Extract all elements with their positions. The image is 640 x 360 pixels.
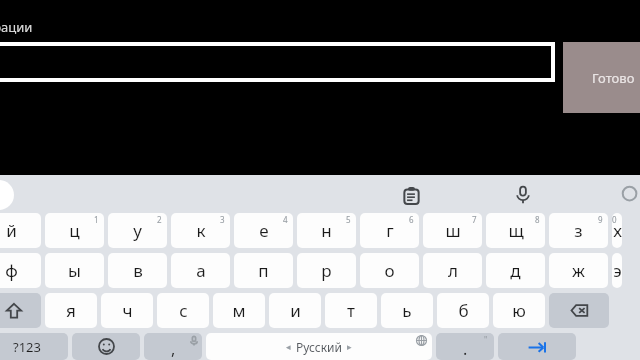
staticText: з [574,219,583,242]
button[interactable]: б [437,293,489,328]
staticText: а [196,259,206,282]
staticText: р [321,259,332,282]
button[interactable]: о [360,253,419,288]
button[interactable]: з [549,213,608,248]
staticText: . [463,338,468,360]
button[interactable]: Period [436,333,494,360]
staticText: 1 [94,214,99,225]
staticText: " [484,334,488,345]
staticText: Русский [296,339,342,355]
staticText: у [133,219,142,242]
button[interactable]: и [269,293,321,328]
staticText: 4 [283,214,288,225]
staticText: о [384,259,395,282]
staticText: к [196,219,206,242]
staticText: ы [68,259,81,282]
staticText: ц [69,219,80,242]
button[interactable]: ◂ [206,333,432,360]
button[interactable]: щ [486,213,545,248]
button[interactable]: Comma, voice input [144,333,202,360]
button[interactable]: т [325,293,377,328]
staticText: 6 [409,214,414,225]
button[interactable]: ы [45,253,104,288]
staticText: ь [402,299,412,322]
button[interactable]: э [612,253,622,288]
button[interactable]: г [360,213,419,248]
button[interactable]: ф [0,253,41,288]
button[interactable]: к [171,213,230,248]
staticText: ю [512,299,526,322]
staticText: й [6,219,17,242]
staticText: ж [572,259,585,282]
staticText: т [347,299,355,322]
button[interactable]: в [108,253,167,288]
staticText: 9 [598,214,603,225]
staticText: 8 [535,214,540,225]
staticText: ерации [0,18,33,36]
button[interactable]: Voice input [510,182,536,208]
staticText: с [179,299,188,322]
button[interactable]: Backspace [549,293,609,328]
staticText: н [321,219,332,242]
button[interactable]: я [45,293,97,328]
button[interactable]: Shift [0,293,41,328]
staticText: 2 [157,214,162,225]
staticText: , [171,338,176,360]
staticText: м [232,299,246,322]
button[interactable]: п [234,253,293,288]
button[interactable]: ь [381,293,433,328]
button[interactable]: р [297,253,356,288]
button[interactable]: Emoji [72,333,140,360]
button[interactable]: Suggestion [0,180,14,210]
staticText: ▸ [347,342,352,352]
staticText: 3 [220,214,225,225]
button[interactable]: Готово [563,42,640,113]
staticText: 0 [612,214,617,225]
button[interactable]: Enter [498,333,576,360]
staticText: 7 [472,214,477,225]
button[interactable]: Clipboard [398,182,424,208]
staticText: ш [445,219,461,242]
button[interactable]: ю [493,293,545,328]
button[interactable]: у [108,213,167,248]
staticText: п [258,259,269,282]
button[interactable]: м [213,293,265,328]
staticText: л [448,259,458,282]
button[interactable]: ш [423,213,482,248]
button[interactable] [0,44,553,80]
staticText: ?123 [13,338,41,356]
button[interactable]: а [171,253,230,288]
staticText: ф [5,259,18,282]
button[interactable]: ч [101,293,153,328]
staticText: я [66,299,76,322]
button[interactable]: й [0,213,41,248]
staticText: в [133,259,143,282]
staticText: г [386,219,394,242]
button[interactable]: х [612,213,622,248]
staticText: е [259,219,269,242]
staticText: х [613,219,622,242]
button[interactable]: ц [45,213,104,248]
staticText: Готово [592,69,635,87]
staticText: д [510,259,521,282]
button[interactable]: ж [549,253,608,288]
button[interactable]: л [423,253,482,288]
button[interactable]: н [297,213,356,248]
button[interactable]: с [157,293,209,328]
button[interactable]: Search [618,182,640,208]
staticText: ч [122,299,133,322]
button[interactable]: ?123 [0,333,68,360]
staticText: и [290,299,301,322]
staticText: щ [508,219,524,242]
button[interactable]: д [486,253,545,288]
staticText: ◂ [286,342,291,352]
staticText: э [613,259,622,282]
staticText: б [458,299,469,322]
staticText: 5 [346,214,351,225]
button[interactable]: е [234,213,293,248]
